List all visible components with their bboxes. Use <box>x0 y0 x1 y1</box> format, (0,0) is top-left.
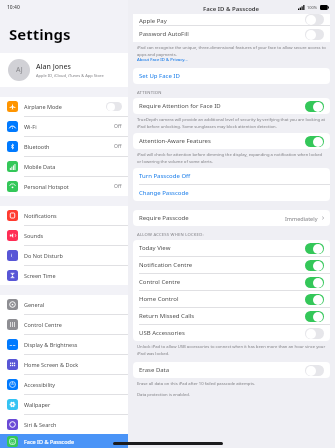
staticText: Turn Passcode Off <box>139 172 191 180</box>
button[interactable]: Attention-Aware Features <box>133 133 330 149</box>
staticText: AJ <box>16 65 23 75</box>
staticText: Password AutoFill <box>139 30 305 38</box>
button[interactable]: Return Missed Calls <box>133 308 330 324</box>
staticText: ATTENTION <box>137 90 162 96</box>
staticText: 100% <box>307 5 318 10</box>
button[interactable]: Off <box>305 328 324 339</box>
button[interactable]: Mobile Data <box>0 157 128 176</box>
button[interactable]: Face ID & Passcode <box>0 434 128 448</box>
staticText: Accessibility <box>24 381 122 388</box>
button[interactable]: Turn Passcode Off <box>133 168 330 184</box>
button[interactable]: Airplane Mode <box>0 97 128 116</box>
staticText: Apple Pay <box>139 17 305 25</box>
button[interactable]: On <box>305 294 324 305</box>
button[interactable]: Home Control <box>133 291 330 307</box>
staticText: Airplane Mode <box>24 103 106 110</box>
button[interactable]: On <box>305 101 324 112</box>
staticText: iPad will check for attention before dim… <box>137 152 327 164</box>
button[interactable]: AJ <box>0 53 128 87</box>
staticText: Control Centre <box>24 321 122 328</box>
button[interactable]: Display & Brightness <box>0 335 128 354</box>
staticText: Apple ID, iCloud, iTunes & App Store <box>36 73 104 78</box>
button[interactable]: Sounds <box>0 226 128 245</box>
staticText: Erase all data on this iPad after 10 fai… <box>137 381 256 387</box>
staticText: Return Missed Calls <box>139 312 305 320</box>
button[interactable]: Apple Pay <box>133 14 330 25</box>
staticText: Siri & Search <box>24 421 122 428</box>
button[interactable]: Off <box>305 365 324 376</box>
staticText: USB Accessories <box>139 329 305 337</box>
staticText: iPad can recognise the unique, three-dim… <box>137 45 327 57</box>
staticText: General <box>24 301 122 308</box>
button[interactable]: About Face ID & Privacy... <box>137 57 188 63</box>
staticText: Immediately <box>285 215 318 222</box>
button[interactable]: Password AutoFill <box>133 26 330 42</box>
button[interactable]: Do Not Disturb <box>0 246 128 265</box>
button[interactable]: Change Passcode <box>133 185 330 201</box>
staticText: Sounds <box>24 232 122 239</box>
staticText: Wi-Fi <box>24 123 114 130</box>
button[interactable]: Off <box>305 14 324 25</box>
staticText: Erase Data <box>139 366 305 374</box>
staticText: 10:40 <box>7 4 20 11</box>
button[interactable]: USB Accessories <box>133 325 330 341</box>
button[interactable]: Home Screen & Dock <box>0 355 128 374</box>
staticText: Home Screen & Dock <box>24 361 122 368</box>
staticText: ALLOW ACCESS WHEN LOCKED: <box>137 232 204 238</box>
staticText: Attention-Aware Features <box>139 137 305 145</box>
staticText: Unlock iPad to allow USB accessories to … <box>137 344 327 356</box>
staticText: Off <box>114 123 122 130</box>
staticText: Require Attention for Face ID <box>139 102 305 110</box>
staticText: Face ID & Passcode <box>203 5 260 13</box>
staticText: Off <box>114 183 122 190</box>
button[interactable]: Off <box>305 29 324 40</box>
staticText: Data protection is enabled. <box>137 392 190 398</box>
staticText: Alan Jones <box>36 62 71 72</box>
staticText: Bluetooth <box>24 143 114 150</box>
staticText: Set Up Face ID <box>139 72 180 80</box>
staticText: Face ID & Passcode <box>24 438 122 445</box>
button[interactable]: On <box>305 136 324 147</box>
staticText: Require Passcode <box>139 214 285 222</box>
button[interactable]: Erase Data <box>133 362 330 378</box>
button[interactable]: Control Centre <box>133 274 330 290</box>
staticText: TrueDepth camera will provide an additio… <box>137 117 327 129</box>
staticText: Wallpaper <box>24 401 122 408</box>
staticText: Today View <box>139 244 305 252</box>
button[interactable]: Notifications <box>0 206 128 225</box>
staticText: Change Passcode <box>139 189 189 197</box>
button[interactable] <box>106 102 122 111</box>
button[interactable]: Bluetooth <box>0 137 128 156</box>
button[interactable]: Wi-Fi <box>0 117 128 136</box>
staticText: Display & Brightness <box>24 341 122 348</box>
staticText: Control Centre <box>139 278 305 286</box>
button[interactable]: Wallpaper <box>0 395 128 414</box>
staticText: Off <box>114 143 122 150</box>
button[interactable]: Accessibility <box>0 375 128 394</box>
button[interactable]: On <box>305 260 324 271</box>
staticText: Notifications <box>24 212 122 219</box>
button[interactable]: On <box>305 311 324 322</box>
button[interactable]: Personal Hotspot <box>0 177 128 196</box>
button[interactable]: General <box>0 295 128 314</box>
staticText: Settings <box>9 24 71 44</box>
staticText: Notification Centre <box>139 261 305 269</box>
staticText: Screen Time <box>24 272 122 279</box>
button[interactable]: Control Centre <box>0 315 128 334</box>
button[interactable]: Require Attention for Face ID <box>133 98 330 114</box>
button[interactable]: Screen Time <box>0 266 128 285</box>
button[interactable]: Set Up Face ID <box>133 68 330 84</box>
staticText: Home Control <box>139 295 305 303</box>
button[interactable]: On <box>305 243 324 254</box>
staticText: Mobile Data <box>24 163 122 170</box>
button[interactable]: Today View <box>133 240 330 256</box>
button[interactable]: Notification Centre <box>133 257 330 273</box>
button[interactable]: Require Passcode <box>133 210 330 226</box>
button[interactable]: On <box>305 277 324 288</box>
staticText: Personal Hotspot <box>24 183 114 190</box>
staticText: Do Not Disturb <box>24 252 122 259</box>
button[interactable]: Siri & Search <box>0 415 128 434</box>
